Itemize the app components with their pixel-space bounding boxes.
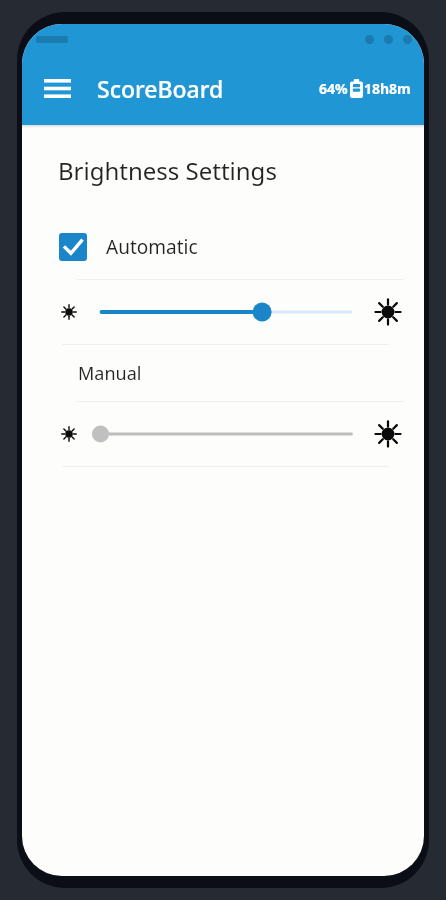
button[interactable]: Open navigation menu — [37, 68, 77, 108]
button[interactable]: Battery status — [319, 79, 411, 98]
staticText: Manual — [78, 361, 142, 386]
staticText: Brightness Settings — [58, 154, 277, 187]
staticText: 64% — [319, 79, 348, 98]
staticText: 18h8m — [364, 79, 411, 98]
staticText: ScoreBoard — [97, 73, 224, 104]
button[interactable]: Automatic — [22, 221, 424, 273]
button[interactable]: Manual — [22, 345, 424, 401]
button[interactable]: Manual brightness level — [22, 402, 424, 466]
button[interactable]: Automatic brightness level — [22, 280, 424, 344]
staticText: Automatic — [106, 234, 198, 260]
